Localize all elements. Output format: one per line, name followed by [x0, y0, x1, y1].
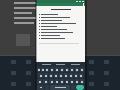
button[interactable] — [39, 31, 82, 34]
button[interactable] — [70, 79, 74, 84]
button[interactable]: Symbols — [37, 85, 44, 90]
button[interactable]: Back — [37, 4, 39, 6]
button[interactable] — [79, 73, 83, 78]
button[interactable] — [60, 67, 64, 72]
button[interactable] — [49, 73, 53, 78]
button[interactable] — [59, 73, 63, 78]
button[interactable] — [75, 79, 79, 84]
button[interactable] — [54, 73, 58, 78]
button[interactable] — [39, 16, 82, 19]
button[interactable] — [44, 73, 48, 78]
button[interactable] — [39, 19, 82, 22]
button[interactable] — [41, 67, 44, 72]
button[interactable]: Back — [36, 3, 85, 6]
button[interactable] — [65, 79, 69, 84]
button[interactable]: Enter — [76, 85, 84, 90]
button[interactable] — [70, 67, 74, 72]
button[interactable] — [55, 79, 59, 84]
button[interactable] — [60, 79, 64, 84]
button[interactable] — [49, 79, 54, 84]
button[interactable] — [69, 73, 73, 78]
button[interactable] — [50, 67, 54, 72]
button[interactable] — [80, 67, 84, 72]
button[interactable]: Space — [50, 85, 70, 90]
button[interactable] — [39, 34, 82, 37]
button[interactable] — [37, 79, 42, 84]
button[interactable] — [74, 73, 78, 78]
button[interactable] — [39, 25, 82, 28]
button[interactable] — [43, 79, 48, 84]
button[interactable] — [80, 79, 84, 84]
button[interactable] — [75, 67, 79, 72]
button[interactable] — [37, 67, 40, 72]
button[interactable] — [55, 67, 59, 72]
button[interactable] — [38, 73, 43, 78]
button[interactable] — [39, 37, 82, 40]
button[interactable] — [45, 67, 49, 72]
button[interactable] — [39, 22, 82, 25]
button[interactable] — [64, 73, 68, 78]
button[interactable] — [39, 13, 82, 16]
button[interactable] — [39, 28, 82, 31]
button[interactable] — [65, 67, 69, 72]
